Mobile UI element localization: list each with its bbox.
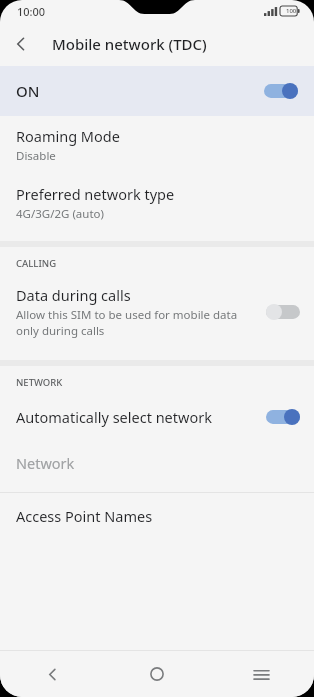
button[interactable]: Home: [104, 651, 209, 697]
staticText: CALLING: [16, 257, 57, 270]
staticText: Roaming Mode: [16, 126, 120, 146]
button[interactable]: Toggle on: [264, 83, 298, 99]
button[interactable]: Automatically select network: [0, 398, 314, 436]
staticText: NETWORK: [16, 376, 63, 389]
button[interactable]: Back: [0, 651, 104, 697]
button[interactable]: Preferred network type: [0, 184, 314, 222]
staticText: 100: [286, 7, 297, 15]
staticText: ON: [16, 81, 40, 101]
staticText: Automatically select network: [16, 407, 212, 427]
staticText: only during calls: [16, 323, 105, 339]
staticText: Disable: [16, 148, 56, 164]
staticText: Mobile network (TDC): [52, 34, 207, 54]
button[interactable]: Access Point Names: [0, 493, 314, 539]
staticText: 10:00: [17, 4, 46, 19]
button[interactable]: Toggle on: [266, 409, 300, 425]
staticText: Preferred network type: [16, 184, 175, 204]
staticText: Network: [16, 453, 75, 473]
button[interactable]: Toggle off: [266, 304, 300, 320]
staticText: Access Point Names: [16, 506, 153, 526]
button[interactable]: ON: [0, 66, 314, 116]
button[interactable]: Back: [0, 23, 42, 65]
staticText: Data during calls: [16, 285, 131, 305]
button[interactable]: Data during calls: [0, 279, 314, 347]
button[interactable]: Roaming Mode: [0, 126, 314, 164]
staticText: Allow this SIM to be used for mobile dat…: [16, 307, 238, 323]
staticText: 4G/3G/2G (auto): [16, 206, 104, 222]
button[interactable]: Recent apps: [209, 651, 314, 697]
